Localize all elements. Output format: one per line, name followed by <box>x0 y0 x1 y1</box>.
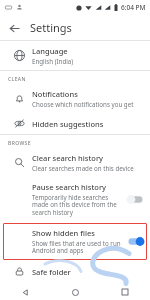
staticText: Temporarily hide searches made on this d… <box>32 193 123 217</box>
button[interactable]: Toggle <box>127 194 144 205</box>
button[interactable]: Home <box>50 284 100 300</box>
button[interactable]: Pause search history <box>0 177 150 222</box>
button[interactable]: Back <box>0 284 50 300</box>
button[interactable]: Notifications <box>0 84 150 113</box>
staticText: Safe folder <box>32 267 71 277</box>
staticText: Clear searches made on this device <box>32 164 134 172</box>
staticText: 6:04 PM <box>121 3 146 12</box>
staticText: Hidden suggestions <box>32 119 104 129</box>
staticText: English (India) <box>32 57 74 65</box>
button[interactable]: Safe folder <box>0 261 150 282</box>
button[interactable]: Language <box>0 41 150 70</box>
staticText: Language <box>32 46 68 56</box>
button[interactable]: Back <box>4 18 24 38</box>
button[interactable]: Hidden suggestions <box>0 113 150 134</box>
button[interactable]: Show hidden files <box>3 223 147 260</box>
button[interactable]: Clear search history <box>0 148 150 177</box>
staticText: Settings <box>30 20 72 35</box>
button[interactable]: Recents <box>100 284 150 300</box>
staticText: Show files that are used to run Android … <box>32 239 123 255</box>
staticText: BROWSE <box>8 140 31 147</box>
staticText: CLEAN <box>8 76 26 83</box>
staticText: Pause search history <box>32 182 107 192</box>
staticText: Choose which notifications you get <box>32 100 134 108</box>
staticText: Show hidden files <box>32 228 95 238</box>
staticText: Clear search history <box>32 153 104 163</box>
button[interactable]: Toggle <box>127 236 144 247</box>
staticText: Notifications <box>32 89 78 99</box>
